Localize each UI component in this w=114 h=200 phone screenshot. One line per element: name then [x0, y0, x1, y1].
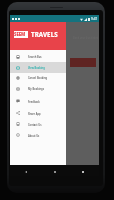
button[interactable]: Search Bus	[10, 51, 66, 62]
button[interactable]: Feedback	[10, 95, 66, 107]
button[interactable]: Cancel Booking	[10, 72, 66, 83]
button[interactable]: Book your bus ticket	[73, 36, 114, 39]
staticText: Search Bus	[28, 55, 42, 58]
staticText: My Bookings	[28, 87, 44, 90]
staticText: 9:41	[91, 17, 98, 21]
staticText: TRAVELS	[31, 30, 58, 38]
staticText: Feedback	[28, 100, 40, 103]
button[interactable]: View Booking	[10, 62, 66, 73]
button[interactable]: SEEMA	[10, 22, 66, 50]
button[interactable]: Share App	[10, 107, 66, 119]
button[interactable]: Recent apps	[80, 169, 86, 175]
staticText: View Booking	[28, 66, 45, 69]
staticText: Cancel Booking	[28, 76, 48, 79]
staticText: Share App	[28, 112, 41, 115]
button[interactable]: About Us	[10, 129, 66, 141]
button[interactable]: Home	[52, 169, 58, 175]
button[interactable]: Back	[23, 169, 29, 175]
button[interactable]: Contact Us	[10, 118, 66, 130]
button[interactable]: My Bookings	[10, 83, 66, 94]
staticText: Contact Us	[28, 123, 42, 126]
staticText: About Us	[28, 134, 40, 137]
staticText: SEEMA	[14, 31, 28, 38]
